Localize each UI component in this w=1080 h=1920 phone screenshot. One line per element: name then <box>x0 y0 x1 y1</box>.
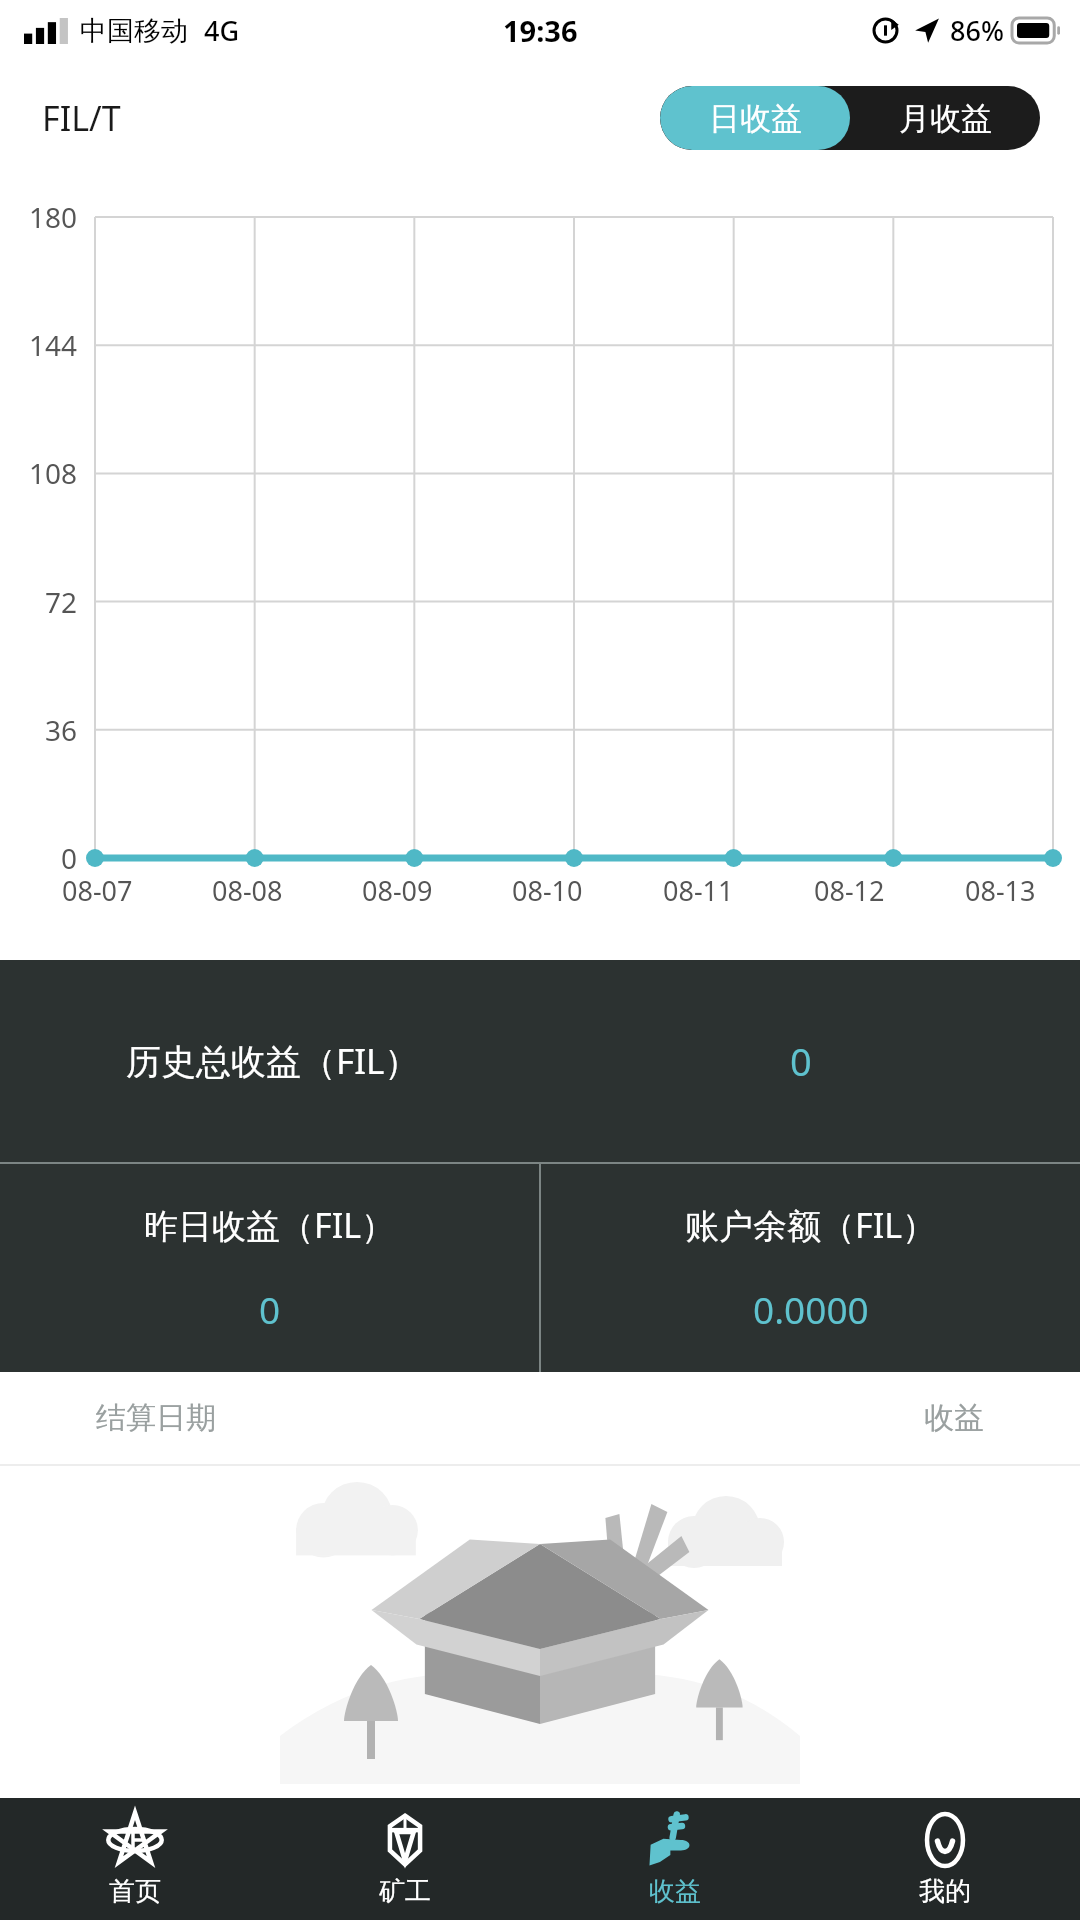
staticText: 08-08 <box>212 872 283 909</box>
button[interactable]: 首页 <box>0 1798 270 1920</box>
staticText: 0 <box>61 839 78 877</box>
staticText: 180 <box>29 198 78 236</box>
button[interactable]: 月收益 <box>850 86 1040 150</box>
staticText: 0 <box>790 1035 812 1087</box>
staticText: FIL/T <box>42 95 121 141</box>
staticText: 日收益 <box>709 99 802 138</box>
button[interactable]: 收益 <box>540 1798 810 1920</box>
staticText: 108 <box>29 454 78 492</box>
staticText: 矿工 <box>379 1875 431 1908</box>
staticText: 收益 <box>649 1875 701 1908</box>
staticText: 08-13 <box>965 872 1036 909</box>
staticText: 19:36 <box>503 11 578 50</box>
staticText: 08-11 <box>663 872 734 909</box>
staticText: 我的 <box>919 1875 971 1908</box>
staticText: 结算日期 <box>96 1399 216 1437</box>
button[interactable]: 矿工 <box>270 1798 540 1920</box>
staticText: 08-07 <box>62 872 133 909</box>
staticText: 72 <box>45 583 78 621</box>
button[interactable]: 账户余额（FIL） <box>541 1164 1080 1372</box>
staticText: 144 <box>29 326 78 364</box>
staticText: 历史总收益（FIL） <box>126 1037 420 1085</box>
button[interactable]: 历史总收益（FIL） <box>0 960 1080 1162</box>
staticText: 月收益 <box>899 99 992 138</box>
staticText: 收益 <box>924 1399 984 1437</box>
staticText: 0 <box>259 1284 281 1334</box>
staticText: 账户余额（FIL） <box>685 1202 936 1248</box>
staticText: 08-10 <box>512 872 583 909</box>
staticText: 昨日收益（FIL） <box>144 1202 395 1248</box>
staticText: 08-12 <box>814 872 885 909</box>
button[interactable]: 我的 <box>810 1798 1080 1920</box>
staticText: 首页 <box>109 1875 161 1908</box>
button[interactable]: 昨日收益（FIL） <box>0 1164 539 1372</box>
button[interactable]: 日收益 <box>660 86 850 150</box>
staticText: 中国移动 <box>80 14 188 48</box>
staticText: 0.0000 <box>753 1284 869 1334</box>
staticText: 08-09 <box>362 872 433 909</box>
staticText: 4G <box>204 12 240 49</box>
staticText: 36 <box>45 711 78 749</box>
staticText: 86% <box>950 12 1004 49</box>
